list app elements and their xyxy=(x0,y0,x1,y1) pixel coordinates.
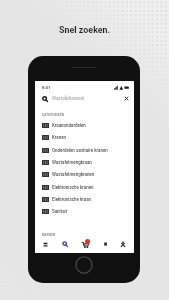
staticText: MERKEN xyxy=(42,233,56,237)
button[interactable]: Kraanonderdelen xyxy=(35,119,134,131)
button[interactable]: Winkelwagen xyxy=(76,236,94,252)
button[interactable]: Wissen xyxy=(122,94,131,103)
button[interactable]: Elektronische kraan xyxy=(35,193,134,205)
button[interactable]: Elektronische kranen xyxy=(35,181,134,193)
button[interactable]: Menu xyxy=(36,236,54,252)
button[interactable]: Sanitair xyxy=(35,205,134,217)
staticText: Wastafelkranen| xyxy=(52,96,85,101)
staticText: Kranen xyxy=(52,135,67,140)
button[interactable]: Kranen xyxy=(35,131,134,143)
staticText: 8:41 xyxy=(42,85,51,90)
button[interactable]: Wastafelmengkranen xyxy=(35,168,134,180)
button[interactable]: Bewaard xyxy=(96,236,114,252)
staticText: Wastafelmengkranen xyxy=(52,172,95,177)
button[interactable]: Onderdelen sanitaire kranen xyxy=(35,144,134,156)
button[interactable]: Wastafelmengkraan xyxy=(35,156,134,168)
button[interactable]: Account xyxy=(114,236,132,252)
button[interactable]: Zoeken xyxy=(56,236,74,252)
staticText: Sanitair xyxy=(52,209,68,214)
staticText: Elektronische kraan xyxy=(52,197,92,202)
staticText: Wastafelmengkraan xyxy=(52,160,92,165)
staticText: Elektronische kranen xyxy=(52,185,94,190)
staticText: Snel zoeken. xyxy=(59,25,111,35)
staticText: CATEGORIEËN xyxy=(42,113,65,117)
staticText: Onderdelen sanitaire kranen xyxy=(52,148,108,153)
staticText: Kraanonderdelen xyxy=(52,123,86,128)
